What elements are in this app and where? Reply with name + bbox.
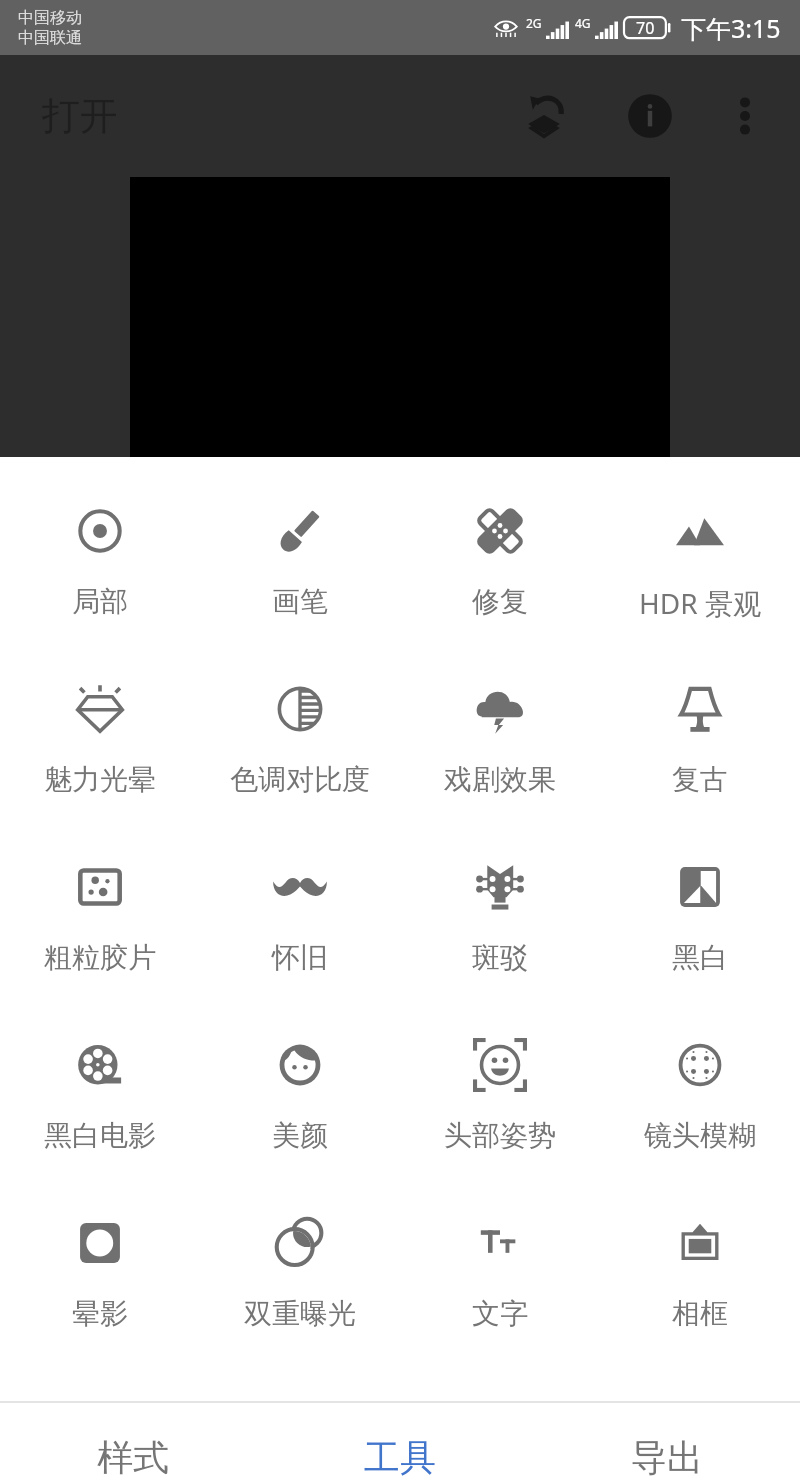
staticText: 工具 [364, 1435, 436, 1480]
button[interactable]: 局部 [0, 457, 200, 635]
button[interactable]: 双重曝光 [200, 1169, 400, 1347]
staticText: 局部 [72, 584, 128, 619]
button[interactable]: 戏剧效果 [400, 635, 600, 813]
button[interactable]: 打开 [0, 82, 142, 150]
button[interactable]: 魅力光晕 [0, 635, 200, 813]
button[interactable]: 相框 [600, 1169, 800, 1347]
staticText: 黑白电影 [44, 1118, 156, 1153]
staticText: 2G [526, 15, 542, 31]
button[interactable]: 导出 [533, 1403, 800, 1480]
button[interactable]: View edits [506, 78, 582, 154]
staticText: 文字 [472, 1296, 528, 1331]
staticText: 戏剧效果 [444, 762, 556, 797]
button[interactable]: 晕影 [0, 1169, 200, 1347]
staticText: HDR 景观 [639, 584, 761, 622]
staticText: 魅力光晕 [44, 762, 156, 797]
staticText: 4G [575, 15, 591, 31]
staticText: 中国联通 [18, 28, 82, 48]
button[interactable]: 修复 [400, 457, 600, 635]
button[interactable]: 工具 [266, 1403, 533, 1480]
staticText: 复古 [672, 762, 728, 797]
staticText: 镜头模糊 [644, 1118, 756, 1153]
button[interactable]: 斑驳 [400, 813, 600, 991]
button[interactable]: 怀旧 [200, 813, 400, 991]
staticText: 下午3:15 [681, 11, 781, 45]
staticText: 晕影 [72, 1296, 128, 1331]
button[interactable]: 头部姿势 [400, 991, 600, 1169]
button[interactable]: 黑白电影 [0, 991, 200, 1169]
staticText: 黑白 [672, 940, 728, 975]
staticText: 斑驳 [472, 940, 528, 975]
staticText: 画笔 [272, 584, 328, 619]
staticText: 70 [636, 17, 655, 39]
button[interactable]: 黑白 [600, 813, 800, 991]
staticText: 打开 [42, 92, 118, 140]
staticText: 美颜 [272, 1118, 328, 1153]
staticText: 色调对比度 [230, 762, 370, 797]
button[interactable]: 镜头模糊 [600, 991, 800, 1169]
button[interactable]: 色调对比度 [200, 635, 400, 813]
button[interactable]: More options [712, 83, 778, 149]
button[interactable]: 复古 [600, 635, 800, 813]
button[interactable]: 美颜 [200, 991, 400, 1169]
staticText: 怀旧 [272, 940, 328, 975]
button[interactable]: 文字 [400, 1169, 600, 1347]
button[interactable]: Info [612, 78, 688, 154]
staticText: 修复 [472, 584, 528, 619]
staticText: 导出 [631, 1435, 703, 1480]
button[interactable]: HDR 景观 [600, 457, 800, 635]
staticText: 中国移动 [18, 8, 82, 28]
staticText: 粗粒胶片 [44, 940, 156, 975]
button[interactable]: 样式 [0, 1403, 266, 1480]
button[interactable]: 画笔 [200, 457, 400, 635]
staticText: 样式 [97, 1435, 169, 1480]
staticText: 头部姿势 [444, 1118, 556, 1153]
button[interactable]: 粗粒胶片 [0, 813, 200, 991]
staticText: 双重曝光 [244, 1296, 356, 1331]
staticText: 相框 [672, 1296, 728, 1331]
